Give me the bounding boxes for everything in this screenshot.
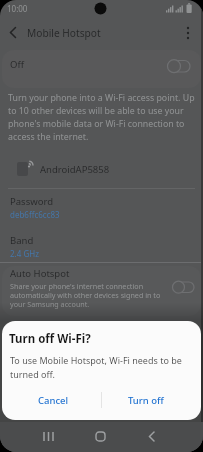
staticText: access the internet. bbox=[8, 131, 89, 143]
button[interactable] bbox=[0, 156, 203, 182]
button[interactable] bbox=[4, 22, 22, 42]
staticText: Cancel bbox=[38, 394, 69, 407]
button[interactable] bbox=[0, 230, 203, 264]
button[interactable] bbox=[88, 424, 112, 450]
button[interactable] bbox=[36, 424, 60, 450]
button[interactable] bbox=[140, 424, 164, 450]
button[interactable]: Turn off bbox=[102, 389, 201, 420]
staticText: Band bbox=[10, 234, 34, 247]
staticText: Password bbox=[10, 195, 53, 208]
staticText: AndroidAP5858 bbox=[40, 163, 110, 176]
staticText: Off bbox=[10, 58, 24, 71]
staticText: deb6ffc6cc83 bbox=[10, 209, 60, 220]
staticText: your Samsung account. bbox=[10, 299, 90, 309]
staticText: Turn off bbox=[128, 394, 164, 407]
staticText: turned off. bbox=[10, 368, 55, 380]
button[interactable] bbox=[0, 192, 203, 226]
staticText: phone's mobile data or Wi-Fi connection … bbox=[8, 118, 185, 130]
button[interactable] bbox=[2, 266, 201, 316]
staticText: Auto Hotspot bbox=[10, 267, 70, 280]
staticText: Share your phone's internet connection bbox=[10, 281, 144, 291]
button[interactable]: Cancel bbox=[2, 389, 101, 420]
staticText: 10:00 bbox=[7, 3, 28, 14]
staticText: Turn off Wi-Fi? bbox=[9, 331, 91, 347]
staticText: automatically with other devices signed … bbox=[10, 290, 161, 300]
staticText: Mobile Hotspot bbox=[27, 26, 101, 40]
staticText: To use Mobile Hotspot, Wi-Fi needs to be bbox=[10, 354, 182, 366]
staticText: Turn your phone into a Wi-Fi access poin… bbox=[8, 92, 195, 104]
staticText: 2.4 GHz bbox=[10, 248, 39, 259]
button[interactable] bbox=[180, 22, 198, 42]
staticText: to 10 other devices will be able to use … bbox=[8, 105, 184, 117]
